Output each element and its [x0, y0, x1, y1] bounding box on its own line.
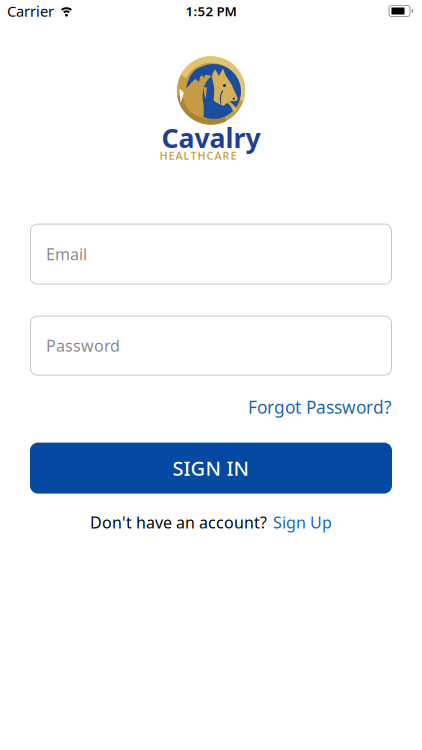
staticText: Carrier	[7, 1, 54, 21]
button[interactable]: Email	[30, 224, 392, 285]
staticText: Email	[46, 243, 87, 265]
staticText: Forgot Password?	[248, 396, 392, 419]
staticText: Sign Up	[273, 512, 332, 533]
button[interactable]: SIGN IN	[30, 443, 392, 494]
staticText: HEALTHCARE	[159, 148, 236, 163]
staticText: Password	[46, 335, 120, 356]
staticText: Cavalry	[161, 120, 260, 155]
staticText: Don't have an account?	[90, 512, 267, 533]
staticText: SIGN IN	[172, 455, 249, 481]
staticText: 1:52 PM	[185, 2, 236, 20]
button[interactable]: Sign Up	[273, 512, 332, 533]
button[interactable]: Password	[30, 316, 392, 376]
button[interactable]: Forgot Password?	[248, 396, 392, 419]
